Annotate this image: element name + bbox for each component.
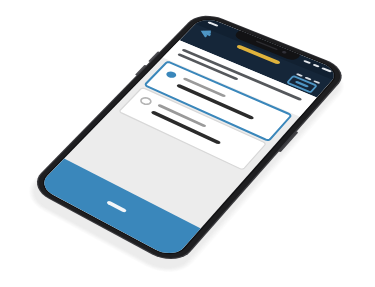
button[interactable]: Security check screen mockup — [0, 0, 375, 287]
